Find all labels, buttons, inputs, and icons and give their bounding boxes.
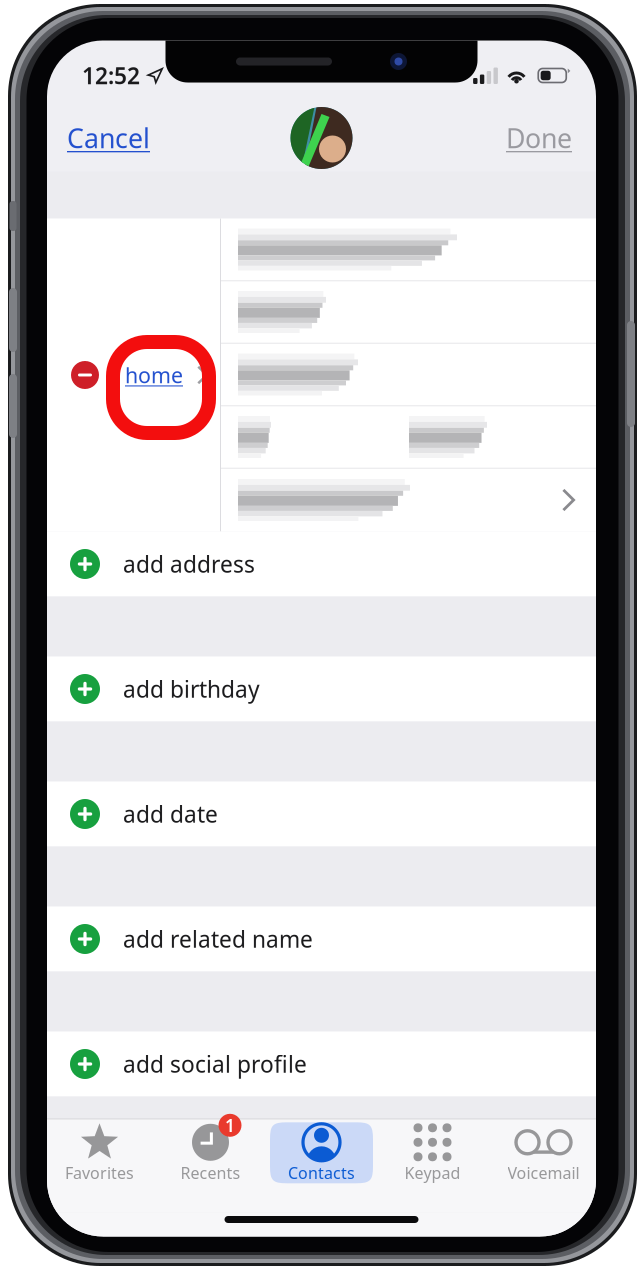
button[interactable]: add address	[47, 531, 596, 596]
staticText: 12:52	[82, 60, 140, 90]
staticText: Done	[506, 120, 572, 156]
staticText: Cancel	[67, 120, 150, 156]
staticText: add date	[123, 799, 218, 829]
button[interactable]: Contacts	[270, 1122, 373, 1183]
button[interactable]: add social profile	[47, 1031, 596, 1096]
button[interactable]: Voicemail	[492, 1122, 595, 1183]
button[interactable]: add related name	[47, 906, 596, 971]
button[interactable]	[221, 469, 596, 531]
button[interactable]: add birthday	[47, 656, 596, 721]
staticText: Keypad	[404, 1162, 460, 1183]
button[interactable]: Cancel	[47, 108, 170, 168]
button[interactable]: Keypad	[381, 1122, 484, 1183]
button[interactable]: Done	[486, 108, 596, 168]
button[interactable]: Favorites	[48, 1122, 151, 1183]
staticText: Voicemail	[507, 1162, 579, 1183]
staticText: home	[125, 361, 183, 389]
staticText: Favorites	[65, 1162, 134, 1183]
button[interactable]: 1	[159, 1122, 262, 1183]
button[interactable]: add date	[47, 781, 596, 846]
button[interactable]: home	[47, 218, 220, 531]
staticText: add related name	[123, 924, 313, 954]
staticText: 1	[225, 1114, 235, 1137]
staticText: add birthday	[123, 674, 260, 704]
staticText: Recents	[180, 1162, 240, 1183]
staticText: add address	[123, 549, 255, 579]
staticText: add social profile	[123, 1049, 307, 1079]
staticText: Contacts	[288, 1162, 355, 1183]
